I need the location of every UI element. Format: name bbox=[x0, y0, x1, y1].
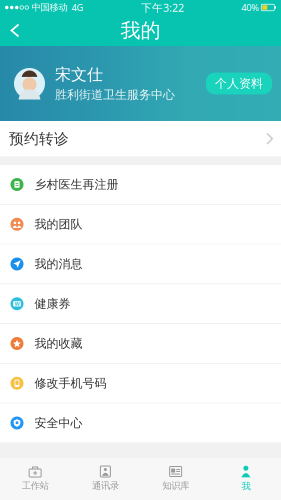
button[interactable]: Back bbox=[0, 15, 30, 46]
staticText: W bbox=[14, 300, 19, 307]
button[interactable]: 我 bbox=[211, 458, 281, 500]
staticText: 4G bbox=[71, 1, 83, 14]
button[interactable]: 个人资料 bbox=[206, 73, 272, 94]
staticText: 胜利街道卫生服务中心 bbox=[55, 87, 175, 102]
button[interactable]: 通讯录 bbox=[70, 458, 140, 500]
staticText: 中国移动 bbox=[31, 2, 67, 13]
staticText: 我的 bbox=[120, 18, 160, 43]
button[interactable]: 乡村医生再注册 bbox=[0, 165, 281, 205]
button[interactable]: 知识库 bbox=[140, 458, 211, 500]
button[interactable]: 我的团队 bbox=[0, 205, 281, 245]
staticText: 工作站 bbox=[22, 480, 49, 491]
staticText: 宋文仕 bbox=[55, 65, 103, 84]
staticText: 知识库 bbox=[162, 480, 189, 491]
button[interactable]: 我的消息 bbox=[0, 244, 281, 284]
staticText: 我的收藏 bbox=[34, 336, 82, 351]
staticText: 个人资料 bbox=[215, 76, 263, 91]
staticText: 我 bbox=[241, 480, 250, 492]
button[interactable]: 修改手机号码 bbox=[0, 364, 281, 404]
button[interactable]: 预约转诊 bbox=[0, 121, 281, 156]
staticText: 我的团队 bbox=[34, 217, 82, 232]
staticText: 我的消息 bbox=[34, 257, 82, 271]
button[interactable]: W bbox=[0, 284, 281, 324]
staticText: 健康券 bbox=[34, 296, 70, 311]
staticText: 40% bbox=[241, 1, 259, 14]
button[interactable]: 工作站 bbox=[0, 458, 70, 500]
button[interactable]: 安全中心 bbox=[0, 403, 281, 443]
button[interactable]: 我的收藏 bbox=[0, 324, 281, 364]
staticText: 预约转诊 bbox=[9, 130, 69, 148]
staticText: 乡村医生再注册 bbox=[34, 177, 118, 192]
staticText: 安全中心 bbox=[34, 416, 82, 430]
staticText: 修改手机号码 bbox=[34, 376, 106, 391]
staticText: 通讯录 bbox=[92, 480, 119, 491]
staticText: 下午3:22 bbox=[141, 0, 184, 15]
